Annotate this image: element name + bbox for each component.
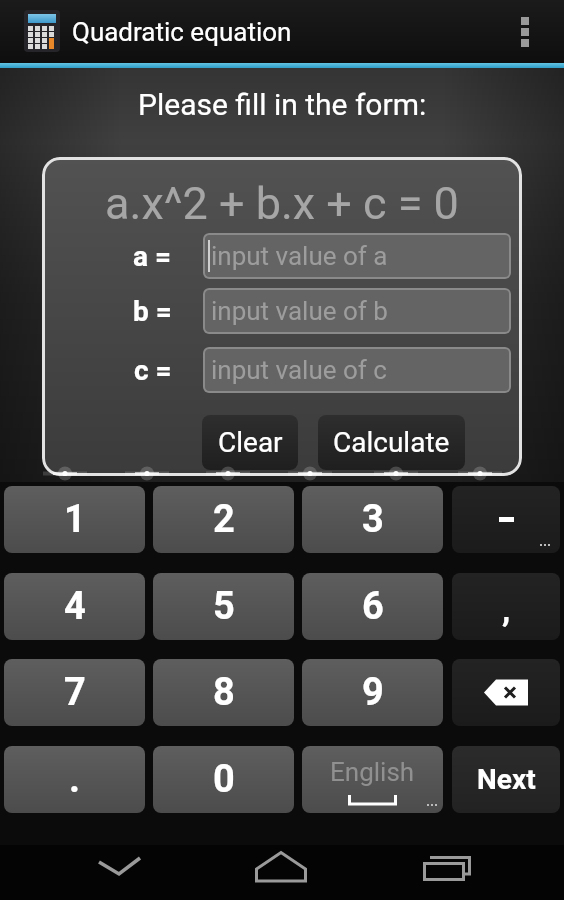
staticText: a.x^2 + b.x + c = 0 xyxy=(42,177,522,230)
staticText: 1 xyxy=(64,497,86,542)
button[interactable]: 6 xyxy=(302,573,443,640)
button[interactable] xyxy=(410,838,490,893)
staticText: 2 xyxy=(213,497,235,542)
button[interactable]: input value of a xyxy=(203,233,511,279)
staticText: input value of c xyxy=(211,355,387,385)
staticText: b = xyxy=(133,295,172,328)
staticText: Please fill in the form: xyxy=(138,87,427,122)
button[interactable]: Quadratic equation xyxy=(0,0,564,63)
staticText: a = xyxy=(133,240,172,273)
button[interactable]: 9 xyxy=(302,659,443,726)
button[interactable] xyxy=(452,659,560,726)
staticText: input value of b xyxy=(211,296,388,326)
staticText: , xyxy=(502,589,511,629)
staticText: . xyxy=(69,757,81,802)
button[interactable]: 7 xyxy=(4,659,145,726)
button[interactable]: 3 xyxy=(302,486,443,553)
button[interactable]: 1 xyxy=(4,486,145,553)
staticText: 9 xyxy=(362,670,384,715)
staticText: 5 xyxy=(213,584,235,629)
button[interactable]: input value of c xyxy=(203,347,511,393)
button[interactable]: 5 xyxy=(153,573,294,640)
staticText: 6 xyxy=(362,584,384,629)
staticText: 4 xyxy=(64,584,86,629)
button[interactable]: Clear xyxy=(202,415,298,470)
staticText: input value of a xyxy=(211,241,388,271)
button[interactable] xyxy=(79,838,159,893)
staticText: English xyxy=(330,757,415,787)
button[interactable]: , xyxy=(452,573,560,640)
button[interactable]: 2 xyxy=(153,486,294,553)
staticText: Quadratic equation xyxy=(72,17,292,47)
staticText: Clear xyxy=(218,426,283,459)
button[interactable]: 0 xyxy=(153,746,294,813)
button[interactable]: Next xyxy=(452,746,560,813)
button[interactable]: input value of b xyxy=(203,288,511,334)
button[interactable]: English xyxy=(302,746,443,813)
button[interactable]: 8 xyxy=(153,659,294,726)
staticText: Next xyxy=(477,763,536,796)
staticText: 8 xyxy=(213,670,235,715)
button[interactable]: Calculate xyxy=(318,415,465,470)
staticText: 0 xyxy=(213,757,235,802)
button[interactable]: 4 xyxy=(4,573,145,640)
staticText: c = xyxy=(134,354,172,387)
button[interactable] xyxy=(500,0,550,63)
staticText: 3 xyxy=(362,497,384,542)
staticText: Calculate xyxy=(333,426,450,459)
button[interactable]: . xyxy=(4,746,145,813)
button[interactable] xyxy=(242,838,322,893)
button[interactable] xyxy=(452,486,560,553)
staticText: 7 xyxy=(64,670,86,715)
